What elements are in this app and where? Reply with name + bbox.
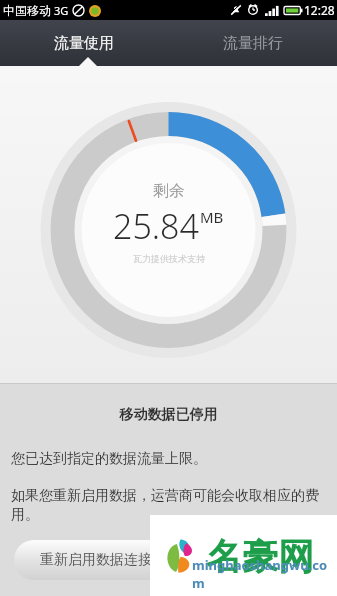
staticText: MB [200,207,224,227]
staticText: 25.84 [113,203,199,249]
button[interactable]: 重新启用数据连接 [14,540,178,580]
staticText: 剩余 [153,181,185,201]
staticText: 移动数据已停用 [0,406,337,424]
button[interactable]: 流量排行 [168,20,337,66]
staticText: 名豪网 [206,534,314,579]
staticText: 瓦力提供技术支持 [133,253,205,264]
staticText: 您已达到指定的数据流量上限。 [11,450,207,468]
staticText: 3G [54,3,69,18]
staticText: 流量排行 [223,34,283,53]
staticText: minghaoshangwu.com [192,556,337,592]
button[interactable]: 流量使用 [0,20,168,66]
staticText: 如果您重新启用数据，运营商可能会收取相应的费用。 [11,487,326,523]
staticText: 流量使用 [54,34,114,53]
staticText: 中国移动 [3,3,51,18]
staticText: 重新启用数据连接 [40,551,152,569]
staticText: 12:28 [304,2,335,18]
